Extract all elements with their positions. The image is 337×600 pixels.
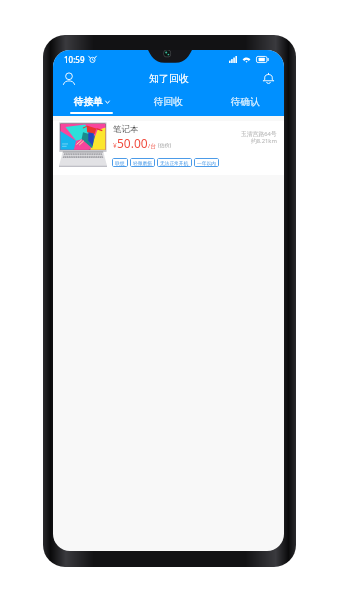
staticText: 待接单 xyxy=(74,96,103,108)
button[interactable]: 待确认 xyxy=(207,89,284,116)
staticText: (估价) xyxy=(158,142,172,149)
button[interactable]: Notifications xyxy=(257,68,279,89)
staticText: 一年以内 xyxy=(197,160,216,166)
staticText: 无法正常开机 xyxy=(160,160,189,166)
staticText: 待确认 xyxy=(231,96,260,108)
button[interactable]: 笔记本 xyxy=(53,121,284,175)
staticText: 约8.21km xyxy=(251,137,277,145)
button[interactable]: Profile xyxy=(58,68,80,89)
staticText: 轻微磨损 xyxy=(133,160,152,166)
staticText: 笔记本 xyxy=(113,124,139,135)
staticText: /台 xyxy=(148,142,156,150)
staticText: 玉清宫路64号 xyxy=(241,130,277,138)
button[interactable]: 待回收 xyxy=(130,89,207,116)
staticText: 知了回收 xyxy=(149,72,189,85)
staticText: 待回收 xyxy=(154,96,183,108)
staticText: 10:59 xyxy=(64,54,85,65)
staticText: 联想 xyxy=(115,160,125,166)
button[interactable]: 待接单 xyxy=(53,89,130,116)
staticText: ¥ xyxy=(113,141,117,150)
staticText: 50.00 xyxy=(117,135,148,151)
